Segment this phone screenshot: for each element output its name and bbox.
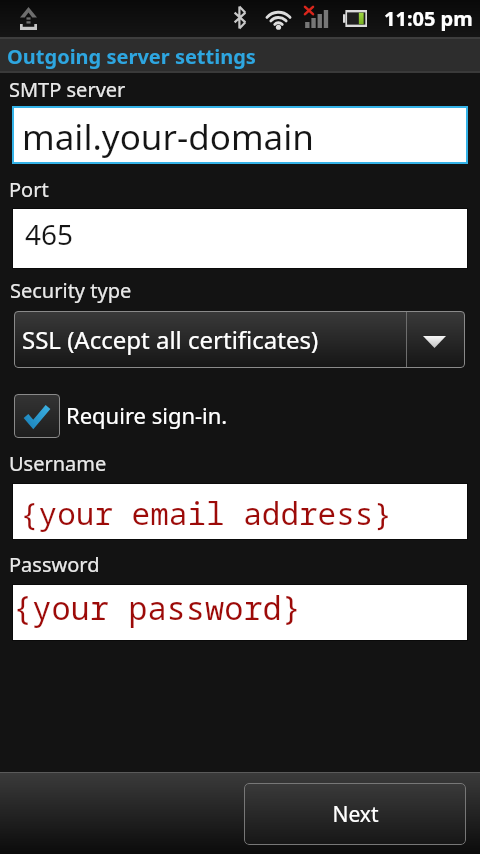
other: Battery <box>343 10 367 27</box>
button[interactable]: {your email address} <box>12 483 468 540</box>
button[interactable]: Next <box>244 783 466 845</box>
staticText: SSL (Accept all certificates) <box>22 323 319 356</box>
button[interactable]: SSL (Accept all certificates) <box>14 311 465 368</box>
staticText: Port <box>9 176 49 203</box>
other: No mobile signal <box>304 8 327 28</box>
button[interactable]: mail.your-domain <box>12 106 468 164</box>
staticText: 465 <box>25 215 74 253</box>
other: Uploading <box>20 7 37 30</box>
button[interactable]: {your password} <box>12 584 468 641</box>
staticText: Next <box>332 800 379 829</box>
staticText: Password <box>9 551 100 578</box>
staticText: 11:05 pm <box>384 5 473 32</box>
staticText: Security type <box>10 277 132 304</box>
other: Mobile data off <box>304 6 314 15</box>
button[interactable]: 465 <box>12 208 468 269</box>
other: Expand security type <box>423 336 446 348</box>
staticText: Outgoing server settings <box>7 43 256 70</box>
button[interactable]: Require sign-in. <box>0 392 480 440</box>
staticText: Username <box>9 450 107 477</box>
staticText: Require sign-in. <box>66 400 228 430</box>
other: Wi-Fi <box>266 8 291 29</box>
staticText: mail.your-domain <box>22 113 314 161</box>
other: Bluetooth <box>234 6 246 29</box>
staticText: {your password} <box>13 586 302 630</box>
staticText: {your email address} <box>20 492 392 534</box>
staticText: SMTP server <box>9 76 126 103</box>
